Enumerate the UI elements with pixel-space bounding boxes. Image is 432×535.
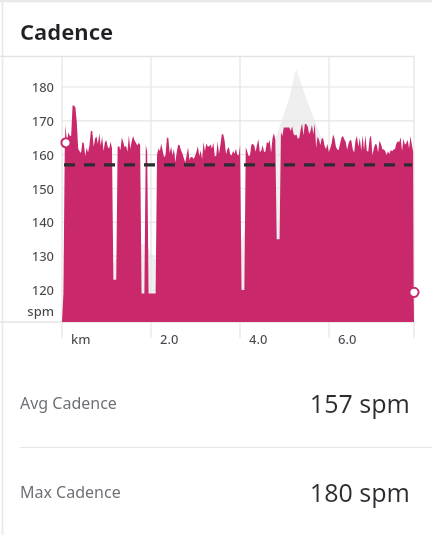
staticText: 2.0 bbox=[160, 330, 179, 348]
staticText: spm bbox=[18, 302, 54, 320]
staticText: Cadence bbox=[20, 16, 114, 46]
staticText: 6.0 bbox=[338, 330, 357, 348]
staticText: 150 bbox=[18, 180, 54, 198]
staticText: 157 spm bbox=[309, 386, 410, 420]
button[interactable]: Max Cadence bbox=[0, 448, 432, 535]
staticText: 140 bbox=[18, 213, 54, 231]
staticText: km bbox=[71, 330, 91, 348]
staticText: 130 bbox=[18, 247, 54, 265]
staticText: 4.0 bbox=[249, 330, 268, 348]
staticText: Max Cadence bbox=[20, 481, 121, 503]
staticText: 160 bbox=[18, 146, 54, 164]
staticText: 120 bbox=[18, 281, 54, 299]
staticText: Avg Cadence bbox=[20, 392, 117, 414]
staticText: 180 bbox=[18, 78, 54, 96]
staticText: 170 bbox=[18, 112, 54, 130]
staticText: 180 spm bbox=[309, 475, 410, 509]
button[interactable]: Avg Cadence bbox=[0, 358, 432, 447]
